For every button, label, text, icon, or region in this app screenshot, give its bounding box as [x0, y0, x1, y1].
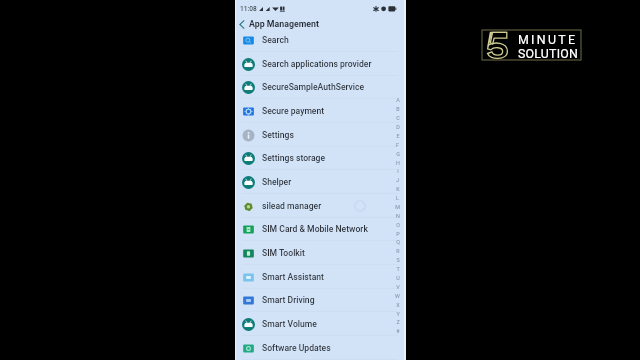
staticText: U	[396, 275, 400, 281]
staticText: SecureSampleAuthService	[262, 82, 365, 92]
staticText: Smart Volume	[262, 319, 317, 329]
staticText: Search	[262, 35, 289, 45]
staticText: Software Updates	[262, 343, 331, 353]
staticText: A	[396, 97, 400, 103]
staticText: L	[396, 195, 399, 201]
button[interactable]: Smart Driving	[235, 288, 405, 312]
staticText: Smart Assistant	[262, 272, 324, 282]
staticText: R	[396, 248, 400, 254]
button[interactable]: Settings storage	[235, 146, 405, 170]
staticText: silead manager	[262, 201, 322, 211]
staticText: M	[395, 204, 400, 210]
staticText: SIM Toolkit	[262, 248, 305, 258]
staticText: Shelper	[262, 177, 292, 187]
staticText: Secure payment	[262, 106, 325, 116]
staticText: K	[396, 186, 400, 192]
staticText: F	[396, 142, 399, 148]
staticText: C	[396, 115, 400, 121]
staticText: MINUTE	[518, 32, 578, 47]
button[interactable]: silead manager	[235, 194, 405, 218]
button[interactable]: Navigate up	[235, 16, 249, 32]
staticText: Q	[396, 239, 400, 245]
staticText: Settings	[262, 130, 294, 140]
button[interactable]: Search	[235, 28, 405, 52]
staticText: SIM Card & Mobile Network	[262, 224, 368, 234]
staticText: Smart Driving	[262, 295, 315, 305]
staticText: D	[396, 124, 400, 130]
staticText: N	[396, 213, 400, 219]
button[interactable]: SIM Card & Mobile Network	[235, 217, 405, 241]
staticText: SOLUTION	[518, 46, 578, 61]
staticText: Z	[396, 319, 400, 325]
button[interactable]: Navigate up	[235, 16, 405, 32]
button[interactable]: SecureSampleAuthService	[235, 75, 405, 99]
staticText: V	[396, 284, 400, 290]
staticText: B	[396, 106, 400, 112]
button[interactable]: SIM Toolkit	[235, 241, 405, 265]
staticText: S	[396, 257, 400, 263]
staticText: G	[396, 151, 400, 157]
staticText: Search applications provider	[262, 59, 372, 69]
staticText: H	[396, 160, 400, 166]
staticText: X	[396, 302, 400, 308]
button[interactable]: Settings	[235, 123, 405, 147]
button[interactable]: Software Updates	[235, 336, 405, 360]
button[interactable]: Smart Assistant	[235, 265, 405, 289]
staticText: P	[396, 231, 400, 237]
button[interactable]: Smart Volume	[235, 312, 405, 336]
staticText: J	[396, 177, 399, 183]
staticText: App Management	[249, 19, 319, 29]
button[interactable]: Search applications provider	[235, 52, 405, 76]
staticText: W	[395, 293, 400, 299]
staticText: #	[396, 328, 400, 334]
staticText: Settings storage	[262, 153, 326, 163]
button[interactable]: Secure payment	[235, 99, 405, 123]
staticText: Y	[396, 311, 400, 317]
staticText: T	[396, 266, 400, 272]
staticText: I	[397, 168, 399, 174]
staticText: O	[396, 222, 400, 228]
button[interactable]: Shelper	[235, 170, 405, 194]
staticText: E	[396, 133, 400, 139]
staticText: 11:08	[240, 5, 257, 13]
